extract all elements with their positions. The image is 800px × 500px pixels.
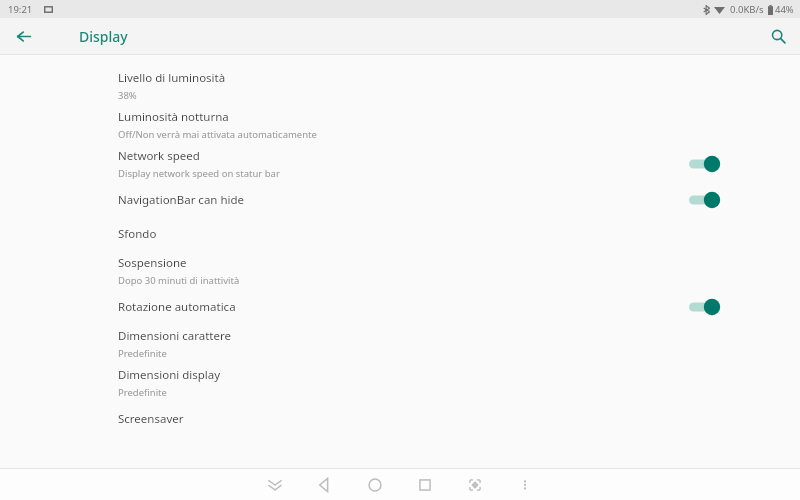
button[interactable]: Sfondo <box>0 217 800 251</box>
staticText: Screensaver <box>118 411 184 427</box>
button[interactable]: Screensaver <box>0 402 800 436</box>
button[interactable]: Dimensioni carattere <box>0 324 800 363</box>
button[interactable]: Dimensioni display <box>0 363 800 402</box>
staticText: Display network speed on statur bar <box>118 167 280 180</box>
button[interactable]: Back <box>300 469 350 500</box>
staticText: Livello di luminosità <box>118 70 226 86</box>
button[interactable]: Back <box>6 19 40 53</box>
button[interactable]: Recents <box>400 469 450 500</box>
button[interactable]: Network speed <box>0 144 800 183</box>
staticText: Rotazione automatica <box>118 299 236 315</box>
staticText: Predefinite <box>118 347 167 360</box>
staticText: Display <box>79 27 128 46</box>
staticText: NavigationBar can hide <box>118 192 245 208</box>
button[interactable]: Sospensione <box>0 251 800 290</box>
button[interactable]: Search <box>761 19 795 53</box>
button[interactable]: Home <box>350 469 400 500</box>
staticText: Dimensioni carattere <box>118 328 231 344</box>
staticText: Sfondo <box>118 226 157 242</box>
staticText: Sospensione <box>118 255 187 271</box>
staticText: 19:21 <box>8 3 33 16</box>
staticText: Dopo 30 minuti di inattività <box>118 274 240 287</box>
staticText: Predefinite <box>118 386 167 399</box>
button[interactable]: Screenshot <box>450 469 500 500</box>
button[interactable]: Toggle <box>687 296 721 318</box>
button[interactable]: Luminosità notturna <box>0 105 800 144</box>
button[interactable]: Rotazione automatica <box>0 290 800 324</box>
staticText: Off/Non verrà mai attivata automaticamen… <box>118 128 317 141</box>
button[interactable]: More options <box>500 469 550 500</box>
button[interactable]: Hide navigation bar <box>250 469 300 500</box>
staticText: 38% <box>118 89 137 102</box>
button[interactable]: Livello di luminosità <box>0 66 800 105</box>
button[interactable]: NavigationBar can hide <box>0 183 800 217</box>
staticText: 44% <box>775 3 794 16</box>
staticText: Luminosità notturna <box>118 109 229 125</box>
button[interactable]: Toggle <box>687 153 721 175</box>
staticText: Network speed <box>118 148 200 164</box>
staticText: 0.0KB/s <box>730 3 764 16</box>
staticText: Dimensioni display <box>118 367 221 383</box>
button[interactable]: Toggle <box>687 189 721 211</box>
